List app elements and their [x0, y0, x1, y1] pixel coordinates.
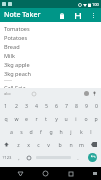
staticText: 3kg apple	[4, 61, 30, 69]
button[interactable]: f	[36, 125, 46, 138]
staticText: .	[77, 154, 79, 161]
button[interactable]: ,	[14, 151, 24, 164]
staticText: 6	[55, 102, 58, 109]
staticText: 4	[35, 102, 38, 109]
button[interactable]: c	[33, 138, 43, 151]
button[interactable]: Voice input	[92, 91, 97, 96]
button[interactable]: Save	[72, 10, 83, 21]
staticText: 5	[45, 102, 48, 109]
staticText: Call Faja	[4, 84, 26, 88]
staticText: v	[47, 141, 50, 148]
button[interactable]: Delete	[56, 10, 67, 21]
staticText: ,	[18, 154, 20, 161]
button[interactable]: r	[31, 112, 41, 125]
staticText: d	[29, 128, 33, 135]
button[interactable]: n	[65, 138, 76, 151]
staticText: z	[17, 141, 20, 148]
staticText: j	[70, 128, 72, 135]
button[interactable]: x	[23, 138, 33, 151]
staticText: 7	[65, 102, 68, 109]
staticText: q	[4, 115, 8, 122]
button[interactable]: 2	[11, 99, 21, 112]
staticText: o	[84, 115, 88, 122]
button[interactable]: 5	[41, 99, 51, 112]
button[interactable]: e	[21, 112, 31, 125]
staticText: u	[64, 115, 68, 122]
staticText: 3kg peach	[4, 70, 31, 78]
staticText: a	[10, 128, 13, 135]
button[interactable]: 7	[61, 99, 71, 112]
button[interactable]: 4	[31, 99, 41, 112]
staticText: r	[35, 115, 38, 122]
staticText: 3	[25, 102, 28, 109]
button[interactable]: w	[11, 112, 21, 125]
button[interactable]: Voice and emoji	[4, 88, 21, 99]
button[interactable]: b	[54, 138, 65, 151]
button[interactable]: Back	[15, 168, 26, 179]
button[interactable]: Enter	[83, 151, 101, 164]
button[interactable]: d	[26, 125, 36, 138]
staticText: 9	[85, 102, 88, 109]
button[interactable]: i	[71, 112, 81, 125]
button[interactable]: v	[43, 138, 54, 151]
button[interactable]: 9	[81, 99, 91, 112]
button[interactable]: z	[13, 138, 23, 151]
button[interactable]: 0	[91, 99, 101, 112]
staticText: n	[69, 141, 73, 148]
button[interactable]: m	[76, 138, 87, 151]
button[interactable]: ?123	[0, 151, 14, 164]
staticText: l	[90, 128, 92, 135]
button[interactable]: j	[66, 125, 76, 138]
button[interactable]: y	[51, 112, 61, 125]
staticText: p	[94, 115, 98, 122]
button[interactable]: p	[91, 112, 101, 125]
staticText: 2	[15, 102, 18, 109]
button[interactable]: Home	[40, 168, 51, 179]
staticText: b	[58, 141, 62, 148]
staticText: e	[25, 115, 28, 122]
staticText: Milk	[4, 52, 15, 60]
button[interactable]: a	[6, 125, 16, 138]
button[interactable]: Emoji	[24, 151, 34, 164]
staticText: 100	[92, 2, 99, 7]
staticText: Bread	[4, 43, 20, 51]
staticText: s	[20, 128, 23, 135]
staticText: w	[14, 115, 19, 122]
button[interactable]: g	[46, 125, 56, 138]
button[interactable]: o	[81, 112, 91, 125]
staticText: Tomatoes	[4, 25, 30, 33]
staticText: i	[75, 115, 77, 122]
staticText: abc	[4, 91, 11, 97]
button[interactable]: Shift	[0, 138, 13, 151]
staticText: y	[55, 115, 58, 122]
staticText: x	[27, 141, 30, 148]
button[interactable]: 6	[51, 99, 61, 112]
button[interactable]: h	[56, 125, 66, 138]
button[interactable]: 1	[0, 99, 11, 112]
staticText: c	[37, 141, 40, 148]
staticText: f	[40, 128, 42, 135]
staticText: Note Taker	[4, 10, 41, 20]
staticText: ?123	[2, 155, 12, 161]
staticText: 0	[95, 102, 98, 109]
button[interactable]: Hide keyboard	[90, 169, 99, 178]
button[interactable]: s	[16, 125, 26, 138]
staticText: g	[49, 128, 53, 135]
button[interactable]: k	[76, 125, 86, 138]
button[interactable]: Backspace	[87, 138, 101, 151]
button[interactable]: 3	[21, 99, 31, 112]
button[interactable]: Recent apps	[65, 168, 76, 179]
staticText: k	[80, 128, 83, 135]
button[interactable]: u	[61, 112, 71, 125]
button[interactable]: 8	[71, 99, 81, 112]
staticText: m	[79, 141, 84, 148]
staticText: t	[45, 115, 47, 122]
button[interactable]: t	[41, 112, 51, 125]
staticText: Potatoes	[4, 34, 28, 42]
button[interactable]: Space	[34, 151, 73, 164]
button[interactable]: q	[0, 112, 11, 125]
staticText: h	[59, 128, 63, 135]
button[interactable]: l	[86, 125, 96, 138]
button[interactable]: More options	[88, 10, 99, 21]
